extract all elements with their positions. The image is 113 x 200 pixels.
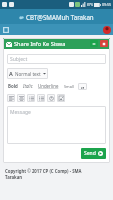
button[interactable]: Quote — [78, 83, 87, 90]
button[interactable]: Image — [57, 94, 65, 102]
staticText: 87% — [87, 3, 93, 7]
staticText: Send — [84, 150, 96, 157]
staticText: Underline — [38, 83, 59, 89]
staticText: Copyright © 2017 CP (C Comp) - SMA Muham… — [5, 168, 108, 174]
button[interactable]: Close — [100, 40, 108, 47]
button[interactable]: Align — [7, 94, 15, 102]
button[interactable]: Bold — [7, 82, 19, 90]
staticText: Bold — [8, 83, 18, 89]
button[interactable]: List — [17, 94, 25, 102]
staticText: Tarakan — [5, 174, 23, 180]
staticText: Normal text — [15, 71, 41, 77]
button[interactable]: Menu — [2, 26, 9, 33]
staticText: Small — [64, 84, 74, 89]
staticText: Italic — [23, 83, 33, 89]
staticText: 09:55 — [102, 2, 111, 7]
button[interactable]: Indent — [27, 94, 35, 102]
button[interactable]: Underline — [37, 82, 60, 90]
button[interactable]: Minimize — [90, 40, 98, 47]
button[interactable]: Small — [63, 83, 75, 90]
staticText: “ — [81, 85, 85, 92]
button[interactable]: Clear — [47, 94, 55, 102]
button[interactable]: Send — [84, 150, 103, 157]
button[interactable]: Outdent — [37, 94, 45, 102]
button[interactable]: Account — [102, 25, 111, 34]
button[interactable]: Message — [7, 106, 106, 144]
staticText: Share Info Ke Siswa — [14, 40, 66, 48]
button[interactable]: Italic — [22, 82, 34, 90]
button[interactable]: A — [9, 70, 46, 77]
staticText: A — [9, 70, 13, 77]
staticText: Subject — [10, 56, 28, 63]
button[interactable]: Subject — [7, 54, 106, 64]
staticText: Message — [10, 109, 31, 116]
staticText: CBT@SMAMuh Tarakan — [26, 13, 94, 21]
